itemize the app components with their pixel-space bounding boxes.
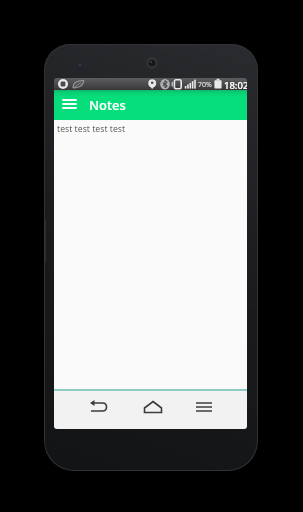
button[interactable] <box>76 391 120 423</box>
staticText: test test test test <box>57 123 126 135</box>
button[interactable]: test test test test <box>54 120 247 138</box>
staticText: Notes <box>89 96 126 114</box>
staticText: 18:02 <box>224 79 247 91</box>
staticText: 70% <box>198 80 212 90</box>
button[interactable] <box>54 90 84 120</box>
button[interactable] <box>182 391 226 423</box>
button[interactable] <box>131 391 175 423</box>
